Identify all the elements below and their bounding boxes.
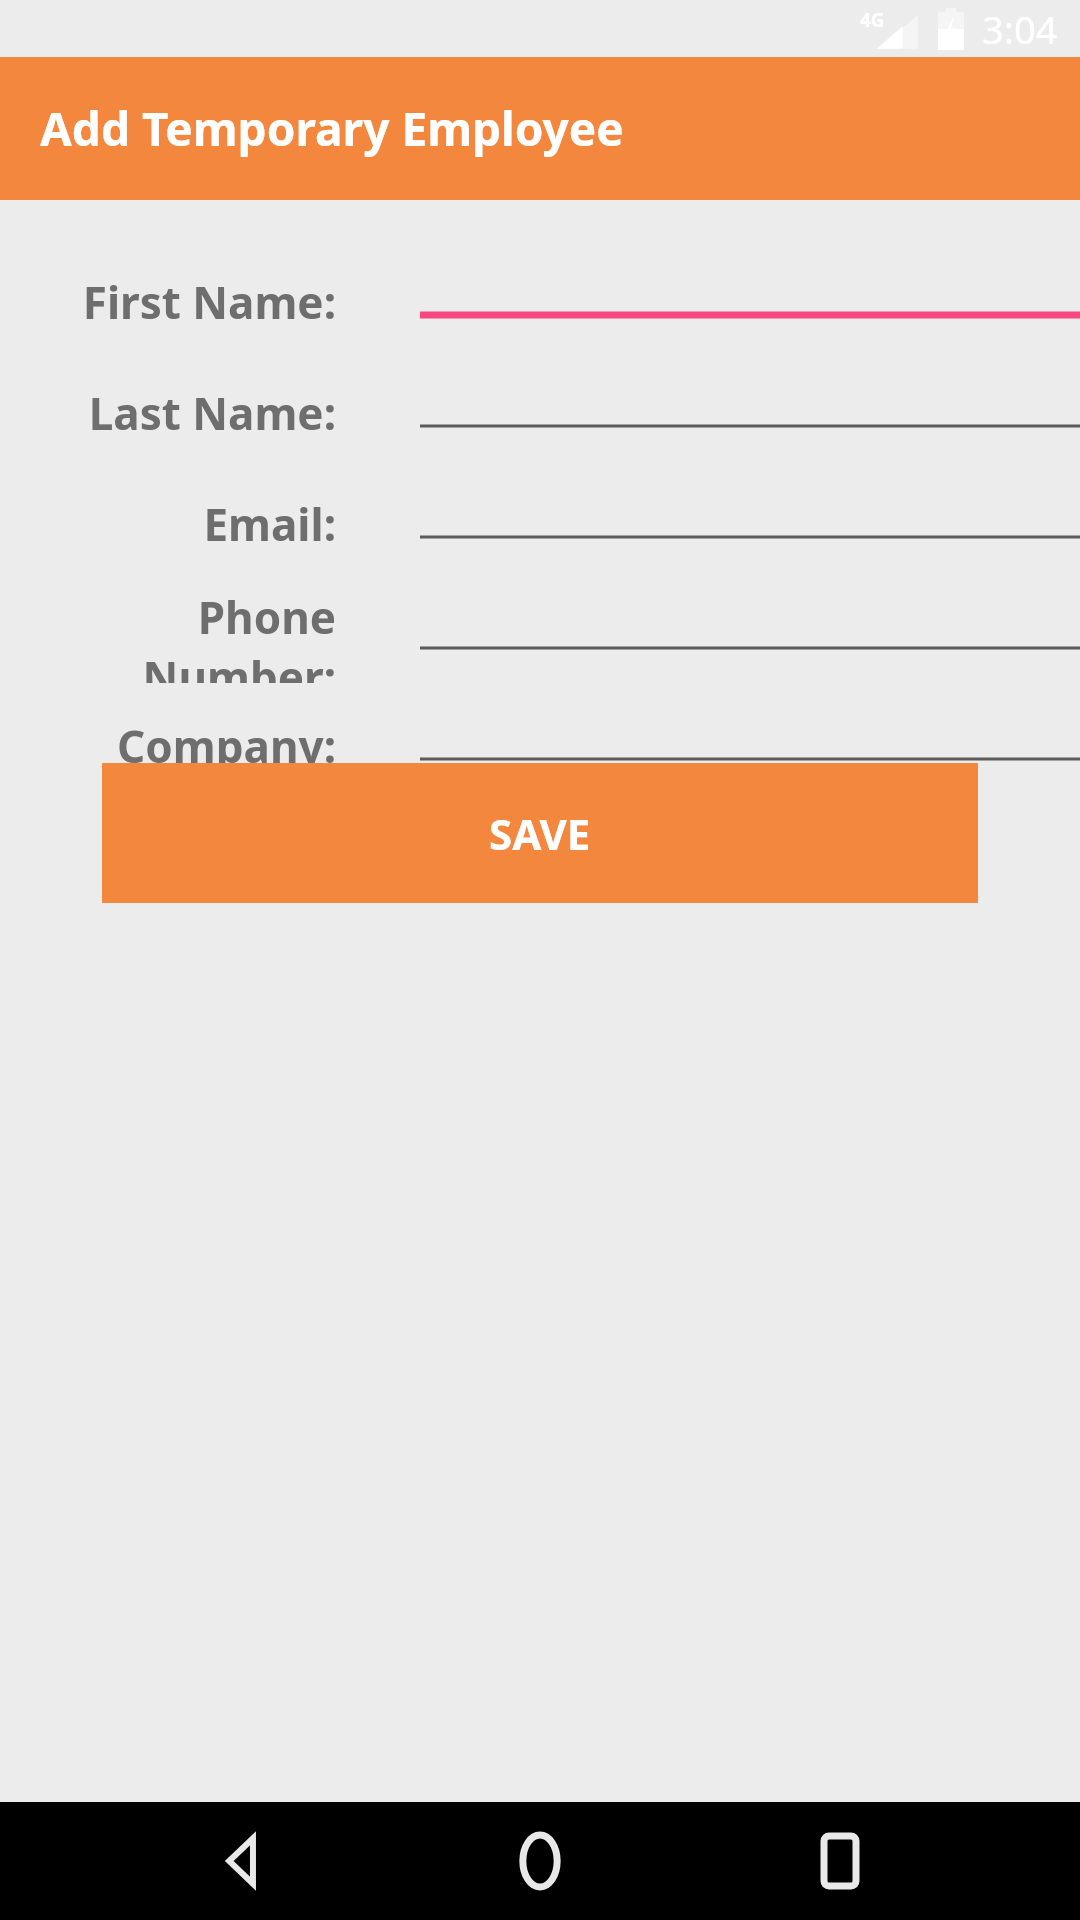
staticText: 3:04 — [982, 3, 1058, 55]
staticText: Phone Number: — [0, 587, 336, 683]
button[interactable]: Back — [180, 1802, 300, 1920]
staticText: SAVE — [489, 805, 591, 862]
button[interactable]: Email: — [0, 476, 1080, 572]
button[interactable]: Phone Number: — [0, 587, 1080, 683]
staticText: Email: — [203, 494, 336, 554]
button[interactable]: SAVE — [102, 763, 978, 903]
button[interactable]: Company: — [0, 698, 1080, 794]
staticText: 4G — [860, 7, 885, 33]
staticText: Add Temporary Employee — [40, 97, 624, 160]
button[interactable]: Home — [480, 1802, 600, 1920]
staticText: First Name: — [82, 272, 336, 332]
button[interactable]: Last Name: — [0, 365, 1080, 461]
staticText: Last Name: — [88, 383, 336, 443]
button[interactable]: Recent apps — [780, 1802, 900, 1920]
button[interactable]: First Name: — [0, 254, 1080, 350]
staticText: Company: — [117, 716, 336, 776]
